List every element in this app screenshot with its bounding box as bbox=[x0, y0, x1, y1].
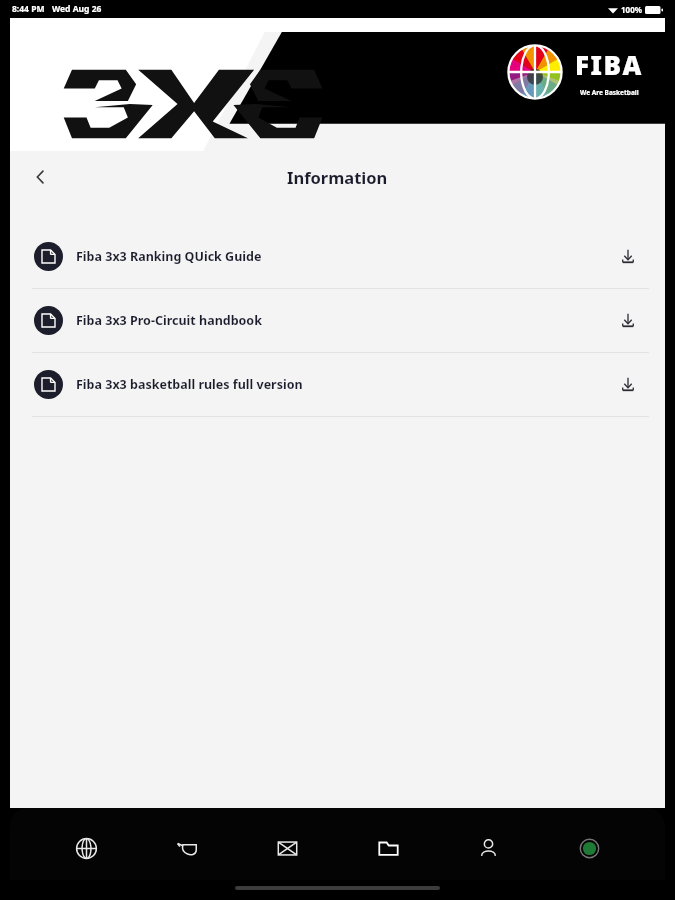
staticText: Information bbox=[287, 166, 388, 188]
staticText: 100% bbox=[621, 4, 642, 15]
button[interactable]: Download bbox=[613, 242, 643, 272]
button[interactable]: Download bbox=[613, 306, 643, 336]
button[interactable]: Back bbox=[24, 160, 58, 194]
staticText: Fiba 3x3 Pro-Circuit handbook bbox=[76, 312, 262, 329]
staticText: Wed Aug 26 bbox=[52, 3, 102, 15]
staticText: Fiba 3x3 Ranking QUick Guide bbox=[76, 248, 262, 265]
staticText: Fiba 3x3 basketball rules full version bbox=[76, 376, 303, 393]
button[interactable]: Fiba 3x3 Ranking QUick Guide bbox=[10, 225, 665, 288]
button[interactable]: Fiba 3x3 basketball rules full version bbox=[10, 353, 665, 416]
button[interactable]: Messages bbox=[263, 824, 311, 872]
button[interactable]: Referee bbox=[163, 824, 211, 872]
button[interactable]: Documents bbox=[364, 824, 412, 872]
button[interactable]: Games bbox=[62, 824, 110, 872]
staticText: 8:44 PM bbox=[12, 3, 45, 15]
staticText: FIBA bbox=[575, 47, 643, 82]
button[interactable]: Download bbox=[613, 370, 643, 400]
button[interactable]: Fiba 3x3 Pro-Circuit handbook bbox=[10, 289, 665, 352]
button[interactable]: Profile bbox=[464, 824, 512, 872]
button[interactable]: Status bbox=[565, 824, 613, 872]
staticText: We Are Basketball bbox=[580, 88, 639, 97]
